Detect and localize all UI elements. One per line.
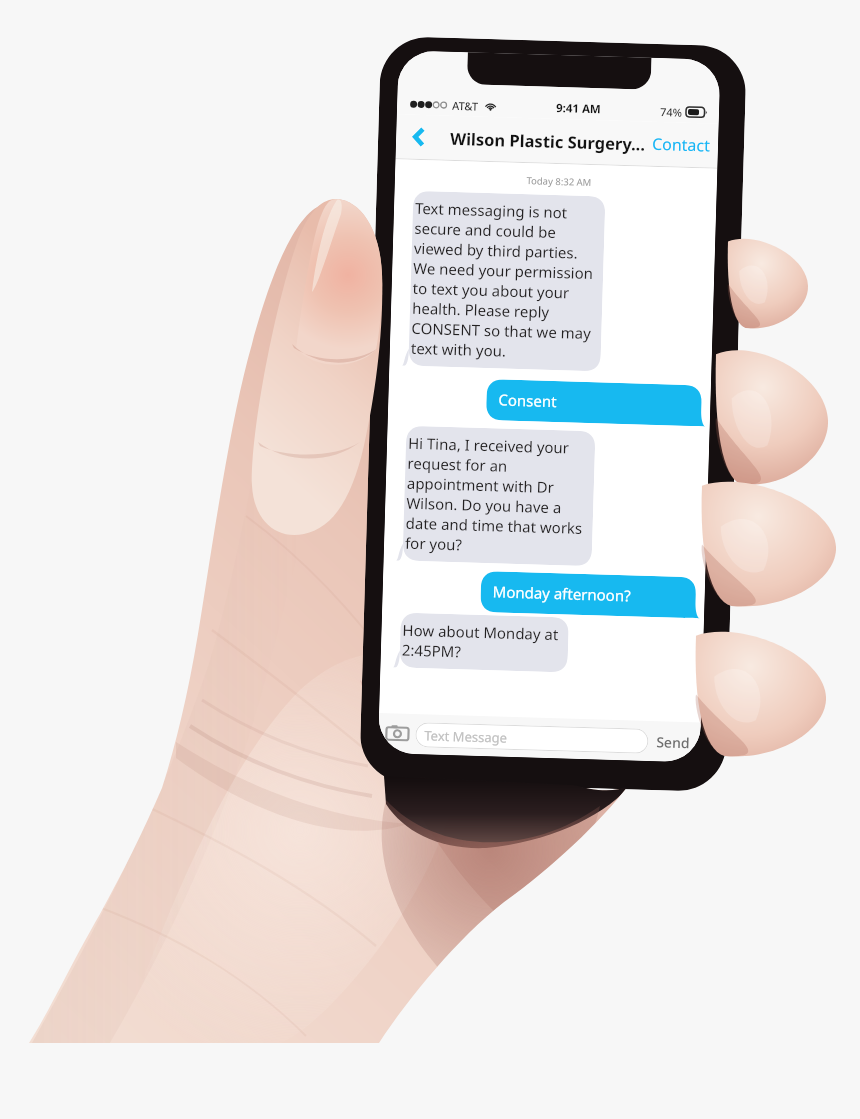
- button[interactable]: Contact: [644, 127, 719, 163]
- staticText: AT&T: [452, 98, 479, 114]
- staticText: 74%: [660, 104, 682, 120]
- button[interactable]: Text messaging is not secure and could b…: [401, 191, 605, 371]
- staticText: Wilson Plastic Surgery...: [450, 127, 645, 155]
- button[interactable]: Camera: [385, 721, 410, 746]
- button[interactable]: Text Message: [415, 722, 649, 754]
- button[interactable]: Send: [653, 732, 693, 752]
- staticText: Hi Tina, I received your request for an …: [405, 433, 585, 558]
- button[interactable]: How about Monday at 2:45PM?: [392, 612, 569, 673]
- button[interactable]: Monday afternoon?: [480, 571, 703, 618]
- staticText: Consent: [498, 389, 558, 411]
- staticText: 9:41 AM: [556, 100, 601, 117]
- staticText: Today 8:32 AM: [403, 170, 715, 193]
- staticText: Contact: [652, 133, 710, 156]
- button[interactable]: Hi Tina, I received your request for an …: [396, 425, 595, 566]
- button[interactable]: Back: [402, 120, 435, 153]
- button[interactable]: Consent: [486, 379, 709, 427]
- staticText: Text Message: [424, 726, 508, 747]
- staticText: Monday afternoon?: [492, 581, 631, 605]
- staticText: How about Monday at 2:45PM?: [402, 620, 559, 664]
- staticText: Text messaging is not secure and could b…: [411, 198, 595, 363]
- staticText: Send: [656, 732, 690, 752]
